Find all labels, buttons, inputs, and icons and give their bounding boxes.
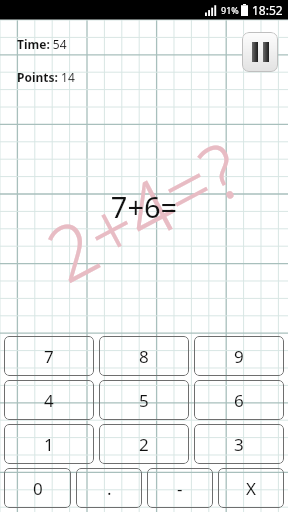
staticText: 18:52 <box>252 2 283 18</box>
staticText: 1 <box>44 433 54 456</box>
button[interactable]: 8 <box>99 336 189 376</box>
button[interactable]: 2 <box>99 424 189 464</box>
button[interactable]: . <box>76 468 142 508</box>
button[interactable]: 6 <box>194 380 284 420</box>
staticText: 9 <box>234 345 244 368</box>
button[interactable]: 0 <box>4 468 71 508</box>
staticText: 7+6= <box>0 187 288 226</box>
staticText: Time: 54 <box>17 36 67 52</box>
button[interactable]: - <box>147 468 213 508</box>
staticText: 0 <box>33 477 43 500</box>
staticText: 3 <box>234 433 244 456</box>
staticText: 2+4=? <box>29 117 259 305</box>
staticText: . <box>107 477 112 500</box>
staticText: 7 <box>44 345 54 368</box>
button[interactable]: 1 <box>4 424 94 464</box>
button[interactable]: 3 <box>194 424 284 464</box>
staticText: 4 <box>44 389 54 412</box>
button[interactable]: 7 <box>4 336 94 376</box>
staticText: - <box>177 477 183 500</box>
staticText: X <box>246 477 256 500</box>
button[interactable]: 4 <box>4 380 94 420</box>
button[interactable]: X <box>218 468 284 508</box>
staticText: 6 <box>234 389 244 412</box>
staticText: 2 <box>139 433 149 456</box>
button[interactable]: 9 <box>194 336 284 376</box>
staticText: Points: 14 <box>17 69 75 85</box>
staticText: 91% <box>221 4 239 16</box>
button[interactable]: Pause <box>242 32 278 72</box>
button[interactable]: 5 <box>99 380 189 420</box>
staticText: 5 <box>139 389 149 412</box>
staticText: 8 <box>139 345 149 368</box>
